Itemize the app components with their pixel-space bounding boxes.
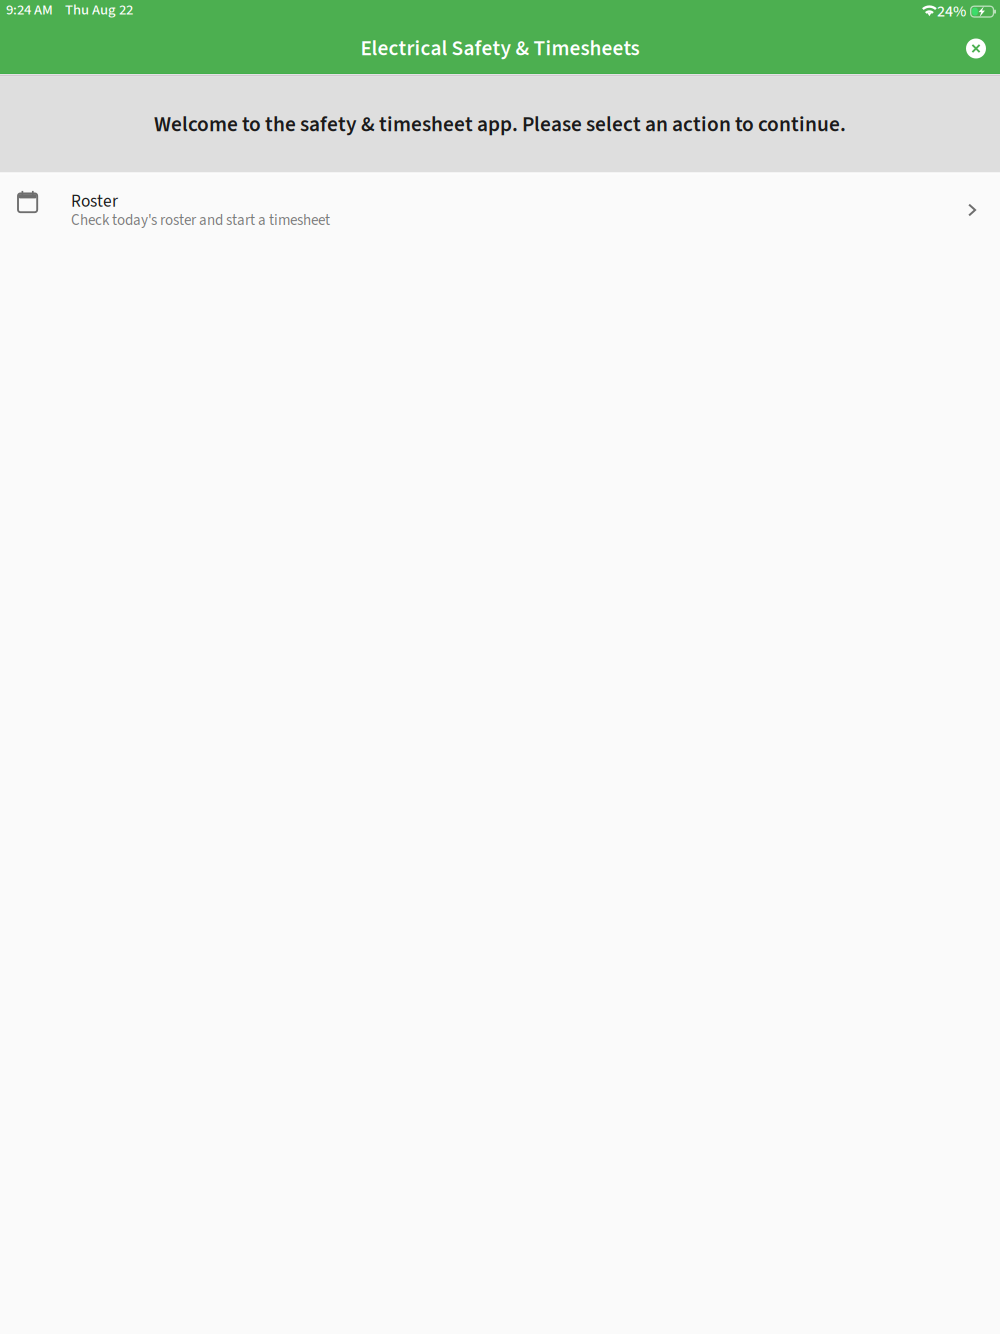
staticText: Roster — [71, 189, 118, 214]
button[interactable]: Close — [958, 30, 994, 66]
staticText: Thu Aug 22 — [65, 0, 133, 20]
staticText: 9:24 AM — [6, 0, 53, 20]
staticText: 24% — [937, 0, 966, 23]
button[interactable]: Roster — [0, 175, 1000, 237]
staticText: Electrical Safety & Timesheets — [360, 33, 639, 64]
staticText: Check today's roster and start a timeshe… — [71, 210, 330, 231]
staticText: Welcome to the safety & timesheet app. P… — [154, 109, 846, 140]
